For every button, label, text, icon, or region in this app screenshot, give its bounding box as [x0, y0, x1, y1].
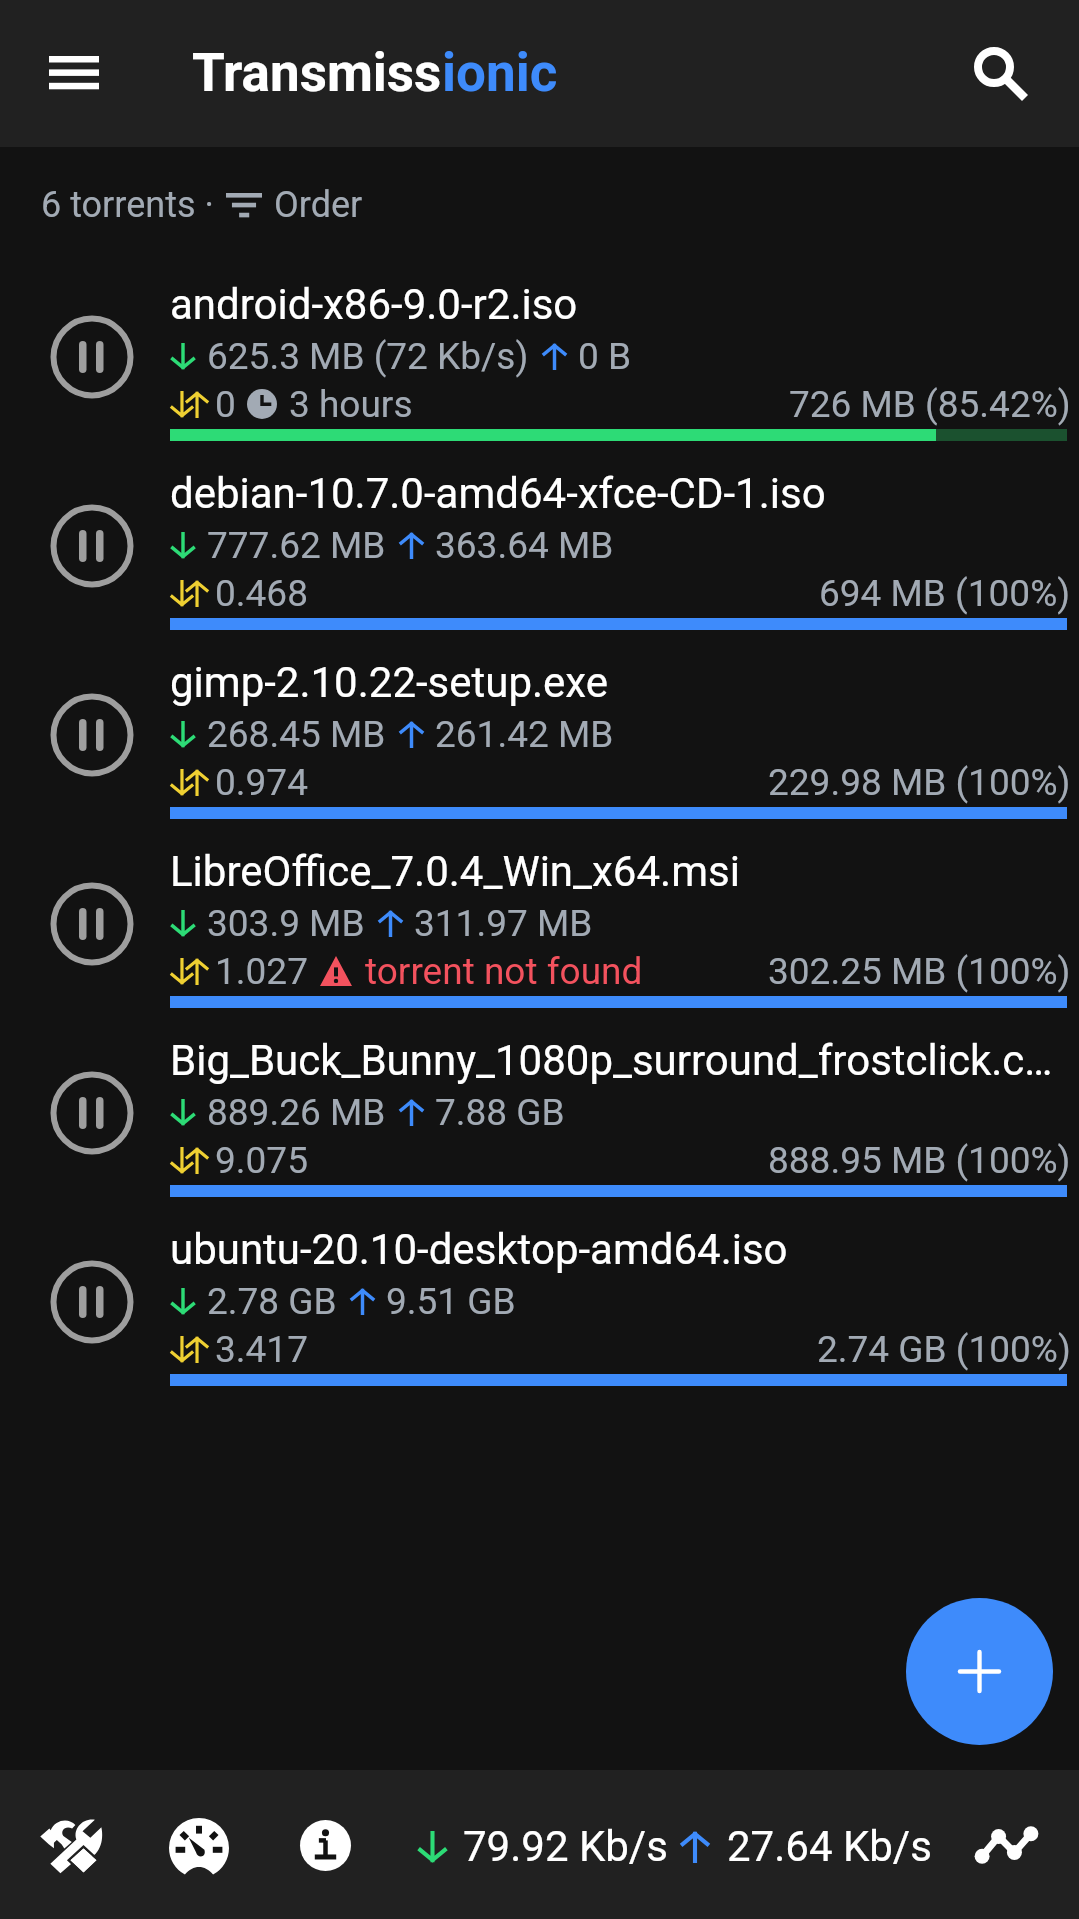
- button[interactable]: Pause: [0, 250, 1079, 439]
- button[interactable]: 6 torrents ·: [41, 175, 363, 235]
- staticText: 9.075: [215, 1139, 308, 1182]
- staticText: 726 MB (85.42%): [789, 383, 1071, 426]
- staticText: 0.974: [215, 761, 308, 804]
- staticText: gimp-2.10.22-setup.exe: [170, 658, 609, 707]
- staticText: 268.45 MB: [207, 713, 386, 756]
- staticText: 3 hours: [289, 383, 413, 426]
- button[interactable]: Pause: [0, 439, 1079, 628]
- staticText: 6 torrents ·: [41, 184, 214, 226]
- button[interactable]: Pause: [49, 881, 135, 967]
- staticText: 889.26 MB: [207, 1091, 386, 1134]
- staticText: 1.027: [215, 950, 308, 993]
- button[interactable]: Pause: [0, 628, 1079, 817]
- staticText: 79.92 Kb/s: [463, 1822, 668, 1871]
- button[interactable]: Pause: [0, 817, 1079, 1006]
- staticText: 2.78 GB: [207, 1280, 337, 1323]
- button[interactable]: Pause: [49, 1259, 135, 1345]
- staticText: ubuntu-20.10-desktop-amd64.iso: [170, 1225, 788, 1274]
- button[interactable]: Menu: [28, 28, 120, 120]
- staticText: 625.3 MB (72 Kb/s): [207, 335, 529, 378]
- button[interactable]: Add torrent: [906, 1598, 1053, 1745]
- staticText: 311.97 MB: [414, 902, 593, 945]
- button[interactable]: Pause: [49, 692, 135, 778]
- button[interactable]: Settings: [27, 1802, 113, 1888]
- staticText: 694 MB (100%): [819, 572, 1071, 615]
- button[interactable]: Speed limits: [156, 1802, 242, 1888]
- staticText: 261.42 MB: [435, 713, 614, 756]
- staticText: 302.25 MB (100%): [768, 950, 1071, 993]
- staticText: 27.64 Kb/s: [727, 1822, 932, 1871]
- staticText: 0: [215, 383, 236, 426]
- button[interactable]: Statistics: [963, 1802, 1049, 1888]
- button[interactable]: Pause: [49, 314, 135, 400]
- staticText: Transmiss: [192, 42, 442, 104]
- staticText: debian-10.7.0-amd64-xfce-CD-1.iso: [170, 469, 826, 518]
- staticText: 3.417: [215, 1328, 308, 1371]
- staticText: 7.88 GB: [435, 1091, 565, 1134]
- button[interactable]: Server info: [282, 1802, 368, 1888]
- staticText: 777.62 MB: [207, 524, 386, 567]
- staticText: 303.9 MB: [207, 902, 365, 945]
- staticText: 229.98 MB (100%): [768, 761, 1071, 804]
- staticText: 363.64 MB: [435, 524, 614, 567]
- staticText: 888.95 MB (100%): [768, 1139, 1071, 1182]
- staticText: torrent not found: [365, 950, 643, 993]
- staticText: android-x86-9.0-r2.iso: [170, 280, 578, 329]
- staticText: Order: [274, 184, 363, 226]
- staticText: ionic: [442, 42, 558, 104]
- button[interactable]: Pause: [49, 1070, 135, 1156]
- button[interactable]: Pause: [0, 1006, 1079, 1195]
- button[interactable]: Search: [954, 28, 1046, 120]
- staticText: 0 B: [578, 335, 632, 378]
- button[interactable]: Pause: [0, 1195, 1079, 1384]
- staticText: LibreOffice_7.0.4_Win_x64.msi: [170, 847, 740, 896]
- staticText: 0.468: [215, 572, 308, 615]
- button[interactable]: Pause: [49, 503, 135, 589]
- staticText: 2.74 GB (100%): [817, 1328, 1071, 1371]
- staticText: 9.51 GB: [386, 1280, 516, 1323]
- staticText: Big_Buck_Bunny_1080p_surround_frostclick…: [170, 1036, 1053, 1085]
